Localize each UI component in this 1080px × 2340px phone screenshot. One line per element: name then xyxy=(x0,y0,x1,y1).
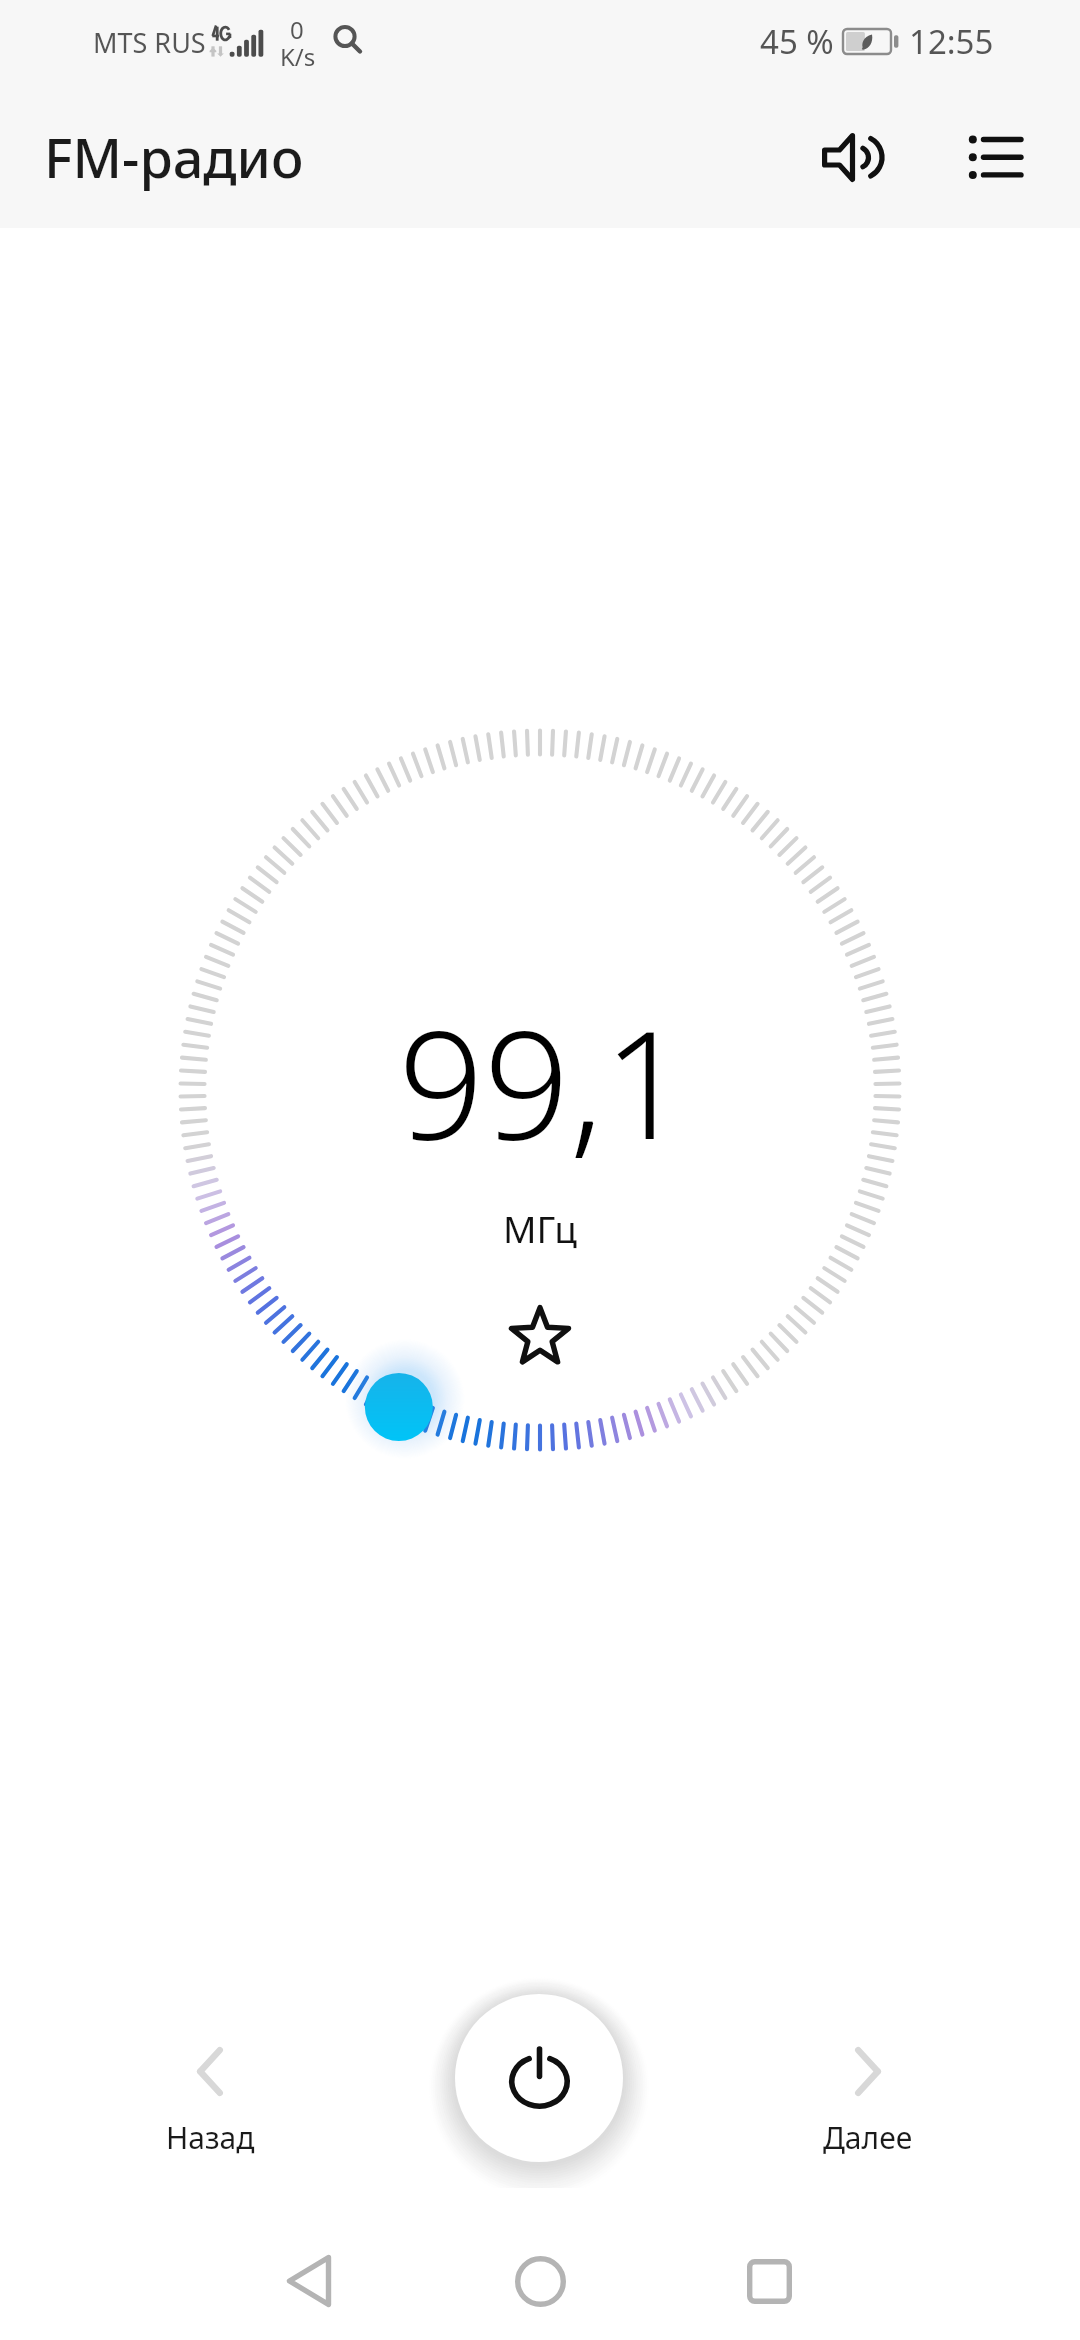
button[interactable]: Назад xyxy=(120,2047,300,2158)
button[interactable]: Station list xyxy=(942,103,1050,211)
staticText: 45 % xyxy=(760,19,834,64)
button[interactable]: Back xyxy=(254,2226,364,2336)
staticText: K/s xyxy=(280,40,316,73)
button[interactable]: Recents xyxy=(714,2226,824,2336)
button[interactable]: Speaker xyxy=(798,103,906,211)
staticText: MTS RUS xyxy=(93,24,206,61)
button[interactable]: Home xyxy=(485,2226,595,2336)
button[interactable]: Search xyxy=(333,25,365,57)
staticText: 99,1 xyxy=(398,979,689,1183)
button[interactable]: Power xyxy=(455,1994,623,2162)
button[interactable]: Favorite xyxy=(494,1290,586,1382)
staticText: МГц xyxy=(503,1203,577,1253)
staticText: 0 xyxy=(290,13,304,46)
staticText: 12:55 xyxy=(909,19,994,64)
staticText: FM-радио xyxy=(44,120,304,194)
staticText: Назад xyxy=(166,2117,255,2158)
staticText: Далее xyxy=(823,2117,913,2158)
button[interactable]: Далее xyxy=(778,2047,958,2158)
button[interactable]: Tuning dial xyxy=(176,726,904,1454)
